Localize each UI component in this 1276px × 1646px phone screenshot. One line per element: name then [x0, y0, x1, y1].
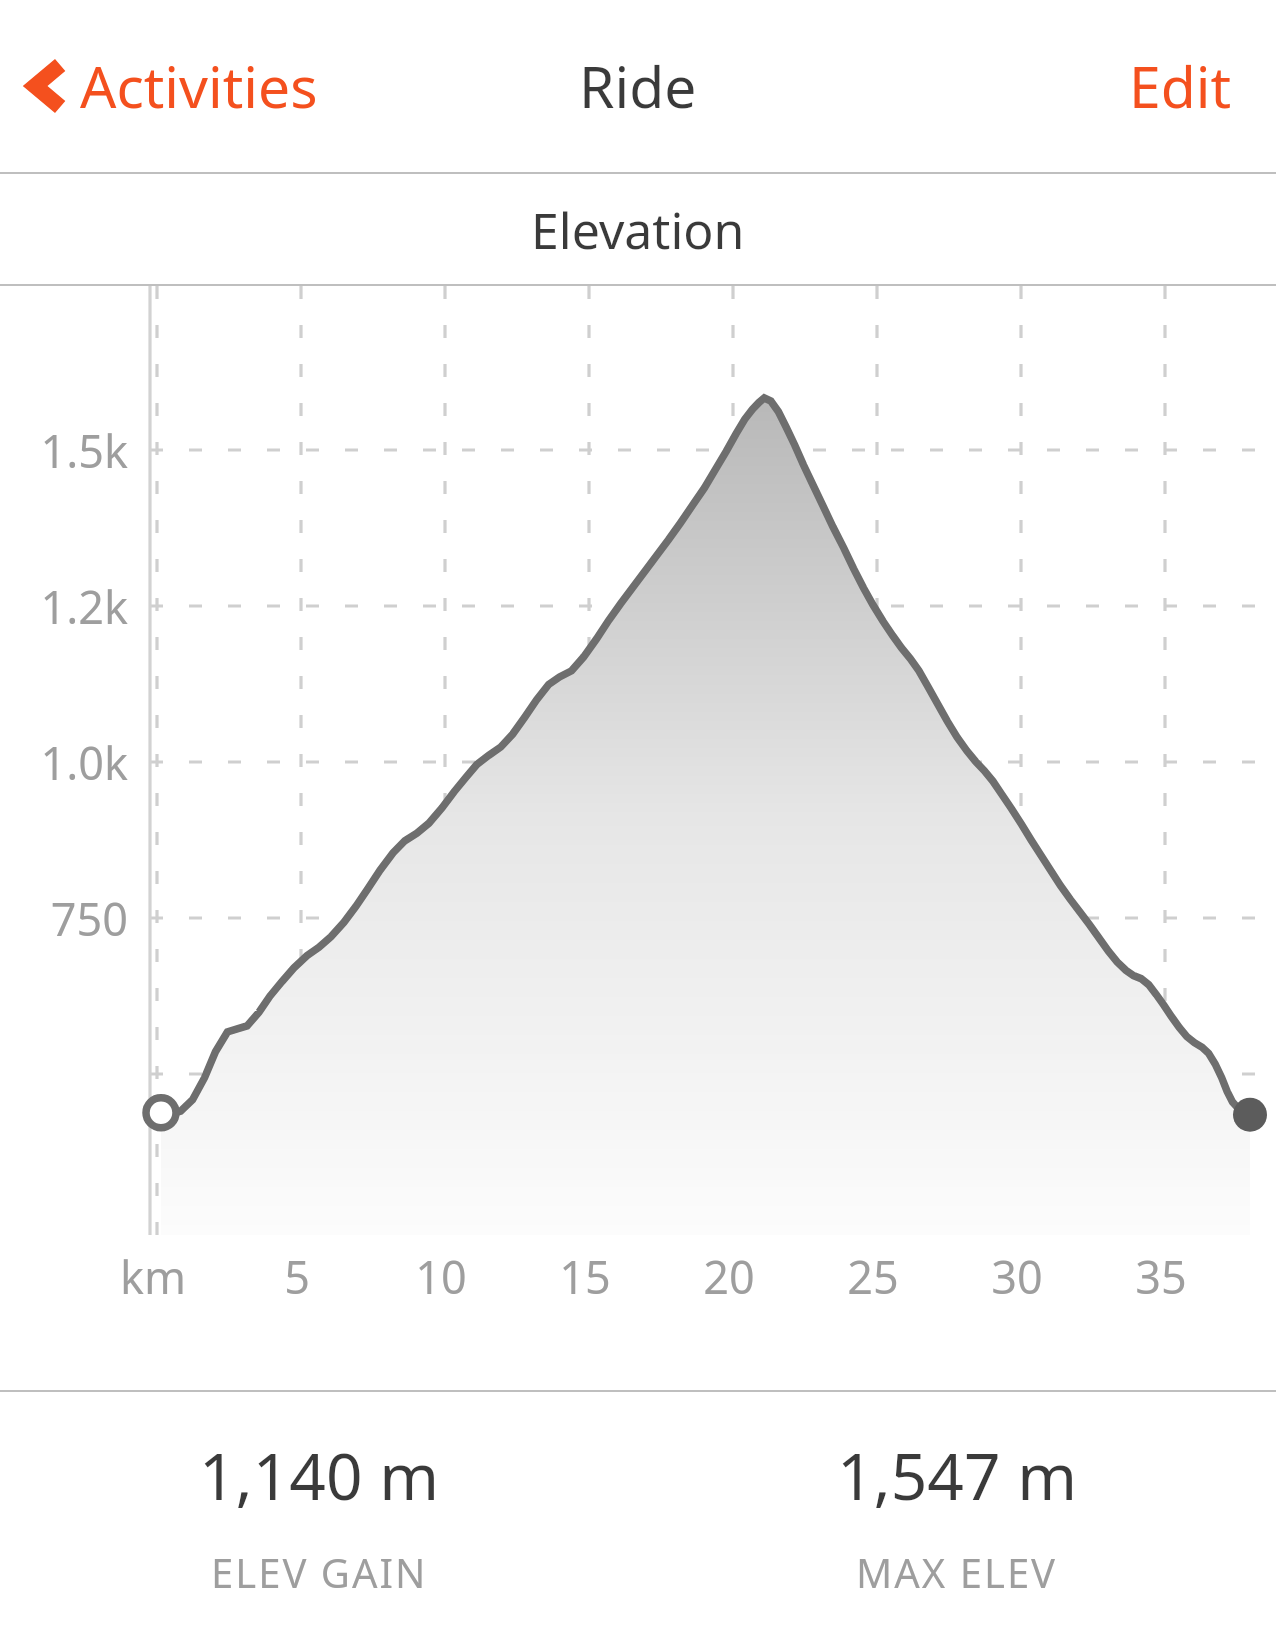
- staticText: 30: [957, 1246, 1077, 1307]
- staticText: 5: [237, 1246, 357, 1307]
- staticText: 1,140 m: [199, 1432, 440, 1519]
- staticText: Activities: [80, 47, 318, 125]
- staticText: 15: [525, 1246, 645, 1307]
- staticText: Edit: [1129, 47, 1232, 125]
- button[interactable]: 1,547 m: [638, 1392, 1276, 1599]
- button[interactable]: Back: [16, 31, 336, 141]
- staticText: 1.2k: [0, 576, 128, 637]
- staticText: 20: [669, 1246, 789, 1307]
- staticText: km: [93, 1246, 213, 1307]
- staticText: Elevation: [531, 196, 745, 264]
- button[interactable]: 1,140 m: [0, 1392, 638, 1599]
- staticText: 750: [0, 888, 128, 949]
- staticText: 35: [1101, 1246, 1221, 1307]
- staticText: MAX ELEV: [856, 1545, 1058, 1599]
- other: Back: [32, 58, 64, 114]
- staticText: 1.5k: [0, 420, 128, 481]
- staticText: 10: [381, 1246, 501, 1307]
- staticText: 1.0k: [0, 732, 128, 793]
- staticText: 1,547 m: [837, 1432, 1078, 1519]
- staticText: ELEV GAIN: [211, 1545, 428, 1599]
- button[interactable]: Edit: [1109, 31, 1252, 141]
- staticText: 25: [813, 1246, 933, 1307]
- staticText: Ride: [579, 47, 697, 125]
